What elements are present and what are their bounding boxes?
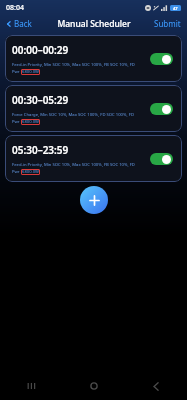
staticText: Pwr (12, 119, 21, 125)
button[interactable]: 05:30–23:59 (5, 135, 182, 182)
button[interactable]: Submit (148, 15, 187, 32)
button[interactable]: Add schedule (80, 186, 108, 214)
staticText: 08:04 (6, 3, 24, 13)
staticText: Back (14, 18, 32, 29)
staticText: 47 (173, 6, 178, 11)
button[interactable]: Recent apps (0, 372, 63, 400)
staticText: 6800.0W (22, 119, 39, 125)
button[interactable]: Toggle schedule (150, 153, 173, 165)
staticText: Force Charge, Min SOC 10%, Max SOC 100%,… (12, 112, 134, 118)
staticText: 00:30–05:29 (12, 93, 69, 107)
staticText: Manual Scheduler (57, 18, 131, 30)
button[interactable]: Back (0, 15, 40, 32)
button[interactable]: Home (63, 372, 125, 400)
button[interactable]: 00:30–05:29 (5, 85, 182, 132)
staticText: Pwr (12, 169, 21, 175)
staticText: 00:00–00:29 (12, 43, 69, 57)
staticText: Pwr (12, 69, 21, 75)
staticText: 6800.0W (22, 69, 39, 75)
button[interactable]: Toggle schedule (150, 103, 173, 115)
button[interactable]: 00:00–00:29 (5, 35, 182, 82)
staticText: Feed-in Priority, Min SOC 10%, Max SOC 1… (12, 162, 135, 168)
staticText: 05:30–23:59 (12, 143, 69, 157)
staticText: 6800.0W (22, 169, 39, 175)
button[interactable]: Back (125, 372, 187, 400)
staticText: Feed-in Priority, Min SOC 10%, Max SOC 1… (12, 62, 135, 68)
button[interactable]: Toggle schedule (150, 53, 173, 65)
